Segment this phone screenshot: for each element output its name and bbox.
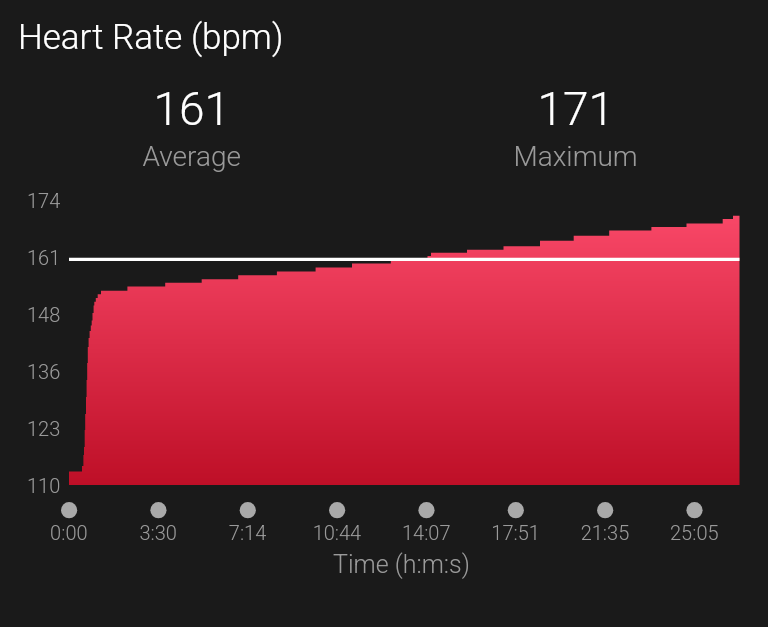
button[interactable]: Heart rate chart bbox=[0, 0, 768, 627]
